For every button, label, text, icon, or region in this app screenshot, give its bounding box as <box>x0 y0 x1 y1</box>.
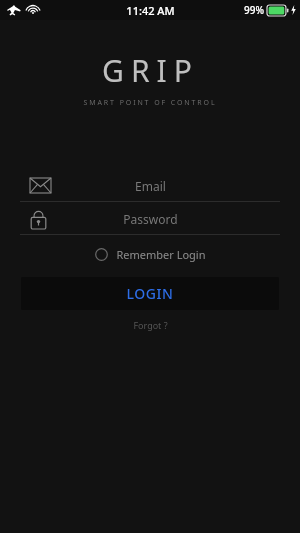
staticText: 99% <box>244 3 264 17</box>
button[interactable]: Email <box>0 170 300 201</box>
button[interactable]: LOGIN <box>21 277 279 310</box>
staticText: SMART POINT OF CONTROL <box>83 98 217 108</box>
button[interactable]: Remember Login <box>91 244 210 265</box>
button[interactable]: Forgot ? <box>125 317 176 333</box>
staticText: Forgot ? <box>133 319 168 331</box>
staticText: Email <box>135 178 166 194</box>
staticText: GRIP <box>102 50 199 91</box>
staticText: LOGIN <box>126 284 174 303</box>
staticText: 11:42 AM <box>126 3 175 18</box>
staticText: Password <box>123 211 178 227</box>
staticText: Remember Login <box>116 247 206 262</box>
button[interactable]: Password <box>0 203 300 234</box>
